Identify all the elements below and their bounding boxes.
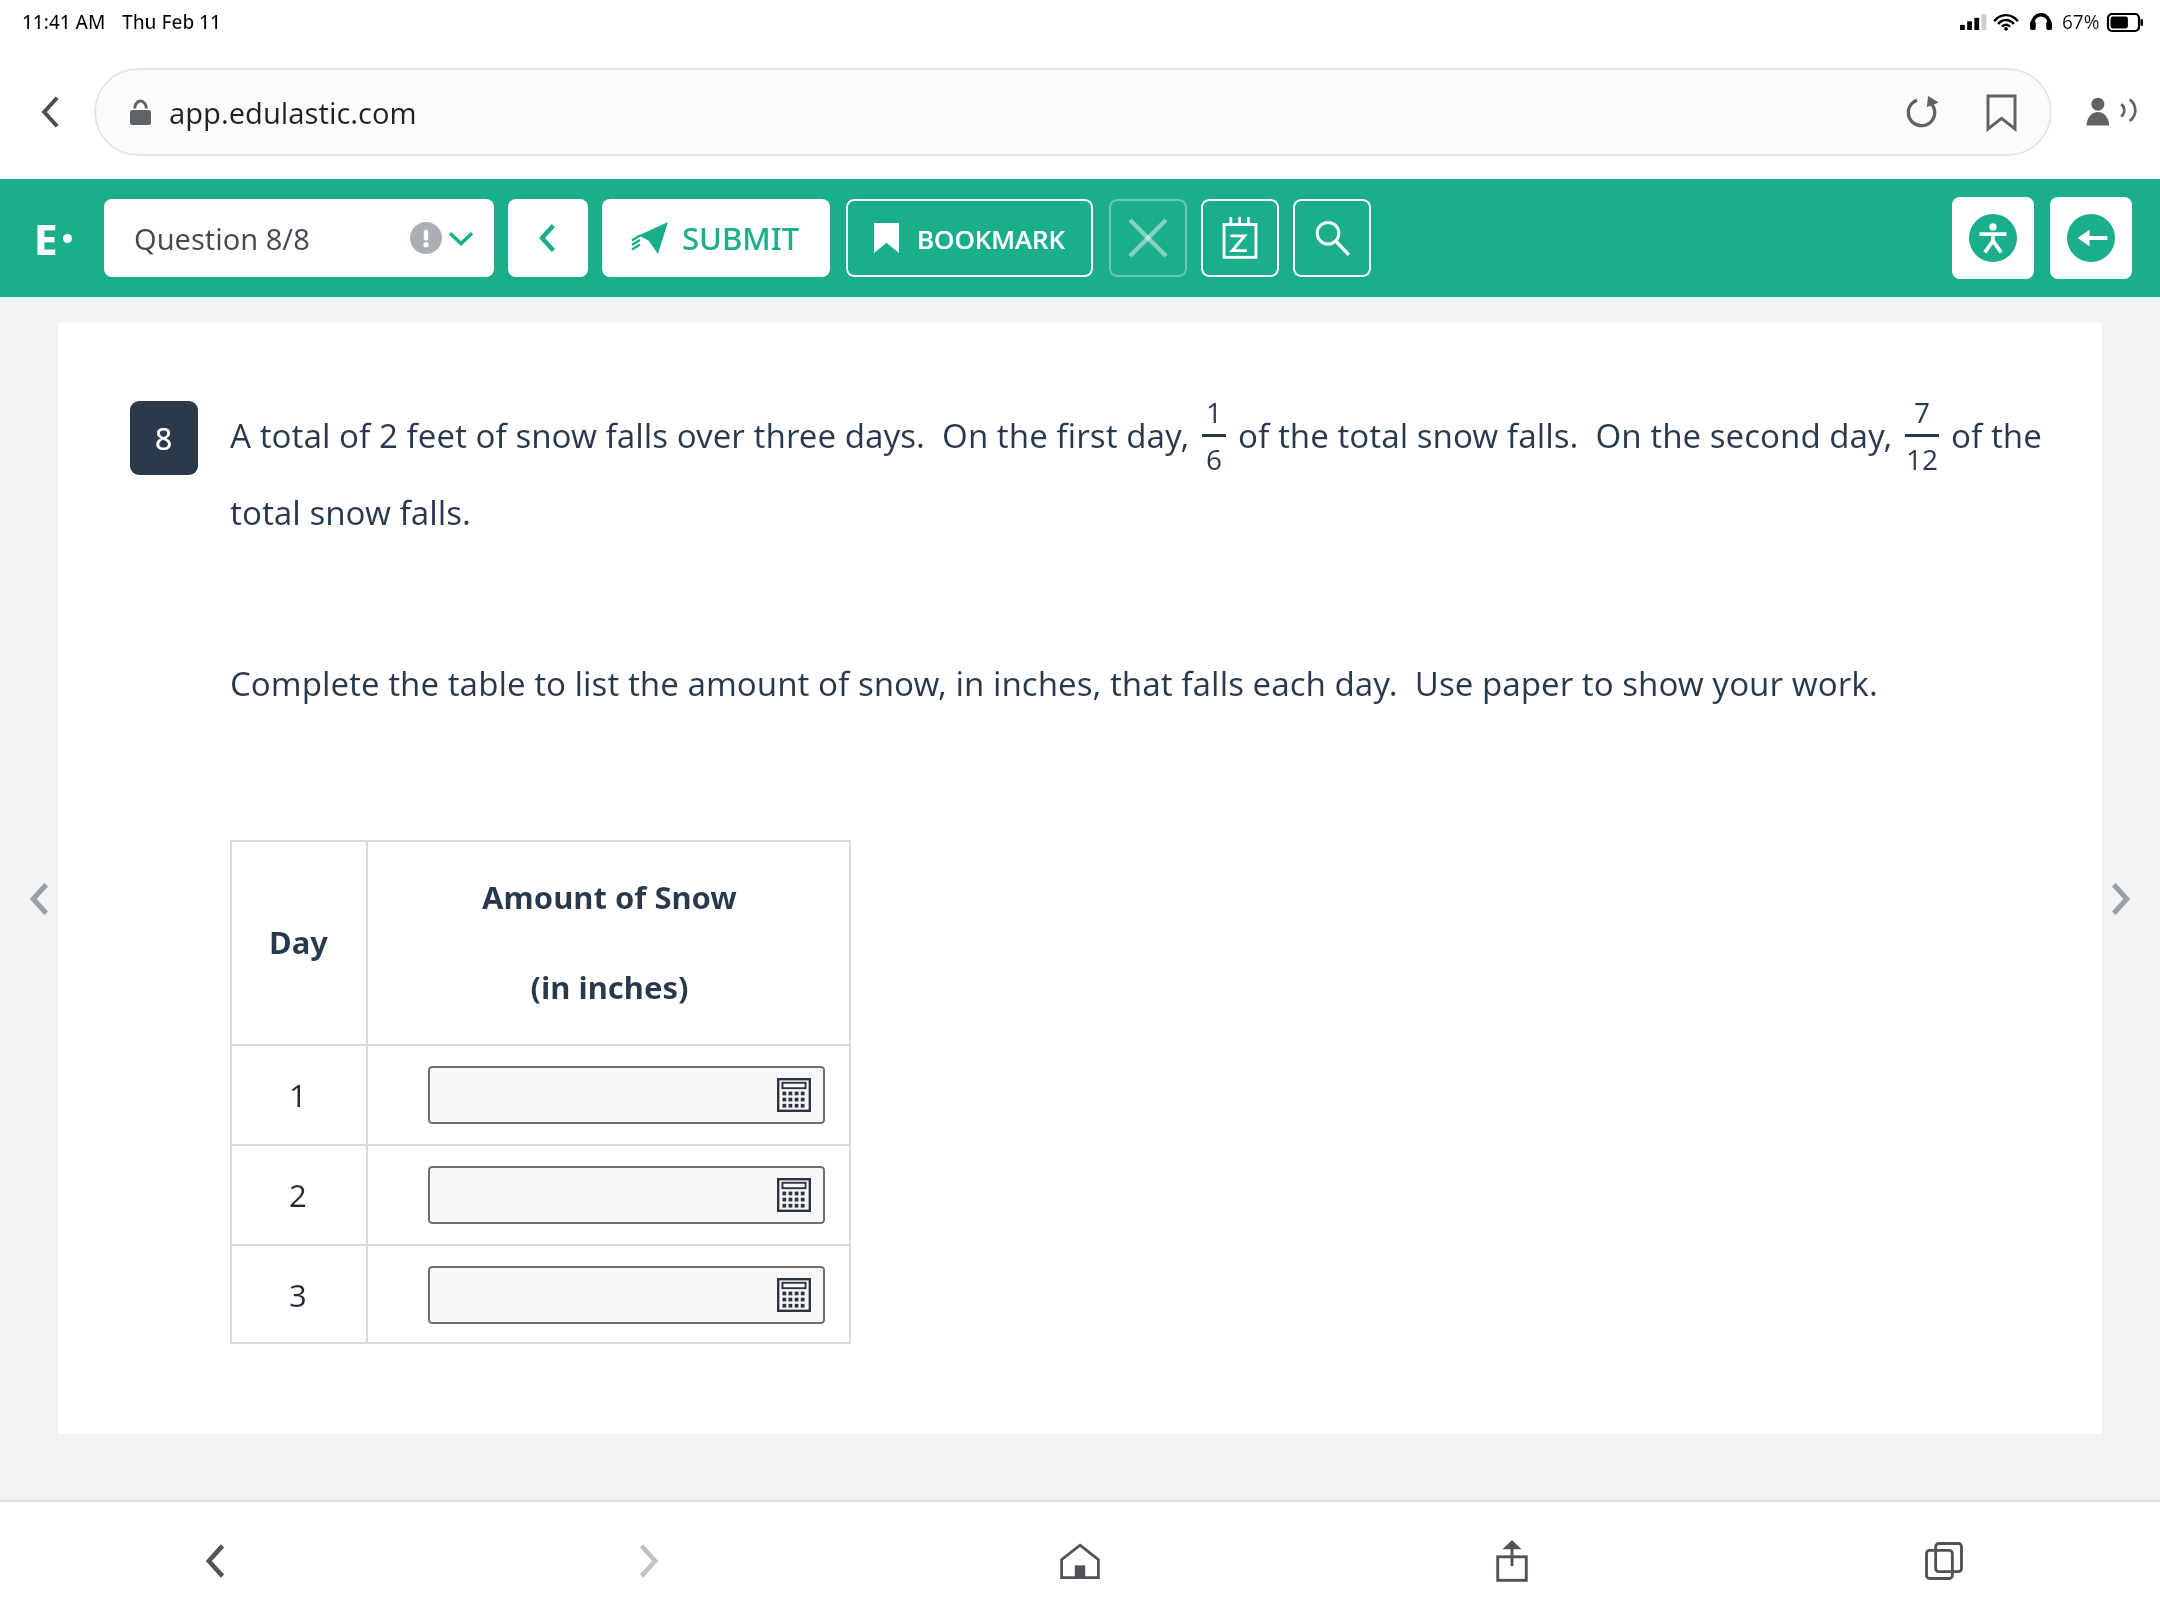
staticText: 1: [1206, 393, 1223, 431]
button[interactable]: Question 8/8: [104, 199, 494, 277]
button[interactable]: Previous: [508, 199, 588, 277]
button[interactable]: BOOKMARK: [846, 199, 1093, 277]
staticText: 3: [289, 1274, 307, 1316]
button[interactable]: Open calculator: [428, 1166, 825, 1224]
staticText: 67%: [2062, 9, 2100, 35]
button[interactable]: SUBMIT: [602, 199, 830, 277]
button[interactable]: E: [34, 210, 72, 267]
button[interactable]: Reload: [1886, 77, 1956, 147]
button[interactable]: Share with contacts: [2070, 77, 2140, 147]
button[interactable]: app.edulastic.com: [94, 68, 2052, 156]
staticText: Amount of Snow: [482, 876, 737, 918]
button[interactable]: Back: [0, 1502, 432, 1620]
button[interactable]: Close: [1109, 199, 1187, 277]
button[interactable]: Next question: [2090, 854, 2150, 944]
staticText: 7: [1914, 393, 1931, 431]
staticText: total snow falls.: [230, 490, 471, 535]
staticText: 2: [289, 1174, 307, 1216]
other: Open calculator: [777, 1178, 811, 1212]
staticText: 6: [1206, 440, 1223, 478]
button[interactable]: Previous question: [10, 854, 70, 944]
staticText: A total of 2 feet of snow falls over thr…: [230, 413, 1190, 458]
staticText: 12: [1906, 440, 1939, 478]
other: Open calculator: [777, 1078, 811, 1112]
button[interactable]: Tabs: [1728, 1502, 2160, 1620]
staticText: BOOKMARK: [917, 221, 1065, 256]
staticText: of the: [1951, 413, 2042, 458]
button[interactable]: Magnify: [1293, 199, 1371, 277]
staticText: Day: [269, 921, 328, 963]
staticText: of the total snow falls. On the second d…: [1238, 413, 1893, 458]
button[interactable]: Forward: [432, 1502, 864, 1620]
staticText: (in inches): [530, 966, 689, 1008]
button[interactable]: Exit: [2050, 197, 2132, 279]
staticText: 1: [289, 1074, 307, 1116]
staticText: 8: [155, 418, 173, 459]
button[interactable]: Share: [1296, 1502, 1728, 1620]
other: Open calculator: [777, 1278, 811, 1312]
button[interactable]: Accessibility: [1952, 197, 2034, 279]
staticText: Thu Feb 11: [122, 9, 221, 35]
button[interactable]: Home: [864, 1502, 1296, 1620]
button[interactable]: Open calculator: [428, 1066, 825, 1124]
staticText: E: [34, 210, 58, 267]
staticText: SUBMIT: [682, 217, 800, 259]
button[interactable]: Back: [20, 81, 82, 143]
button[interactable]: Open calculator: [428, 1266, 825, 1324]
staticText: Question 8/8: [134, 219, 310, 258]
staticText: app.edulastic.com: [169, 93, 417, 132]
button[interactable]: Scratchpad: [1201, 199, 1279, 277]
staticText: Complete the table to list the amount of…: [230, 661, 1878, 706]
staticText: 11:41 AM: [22, 9, 106, 35]
button[interactable]: Bookmarks: [1966, 77, 2036, 147]
